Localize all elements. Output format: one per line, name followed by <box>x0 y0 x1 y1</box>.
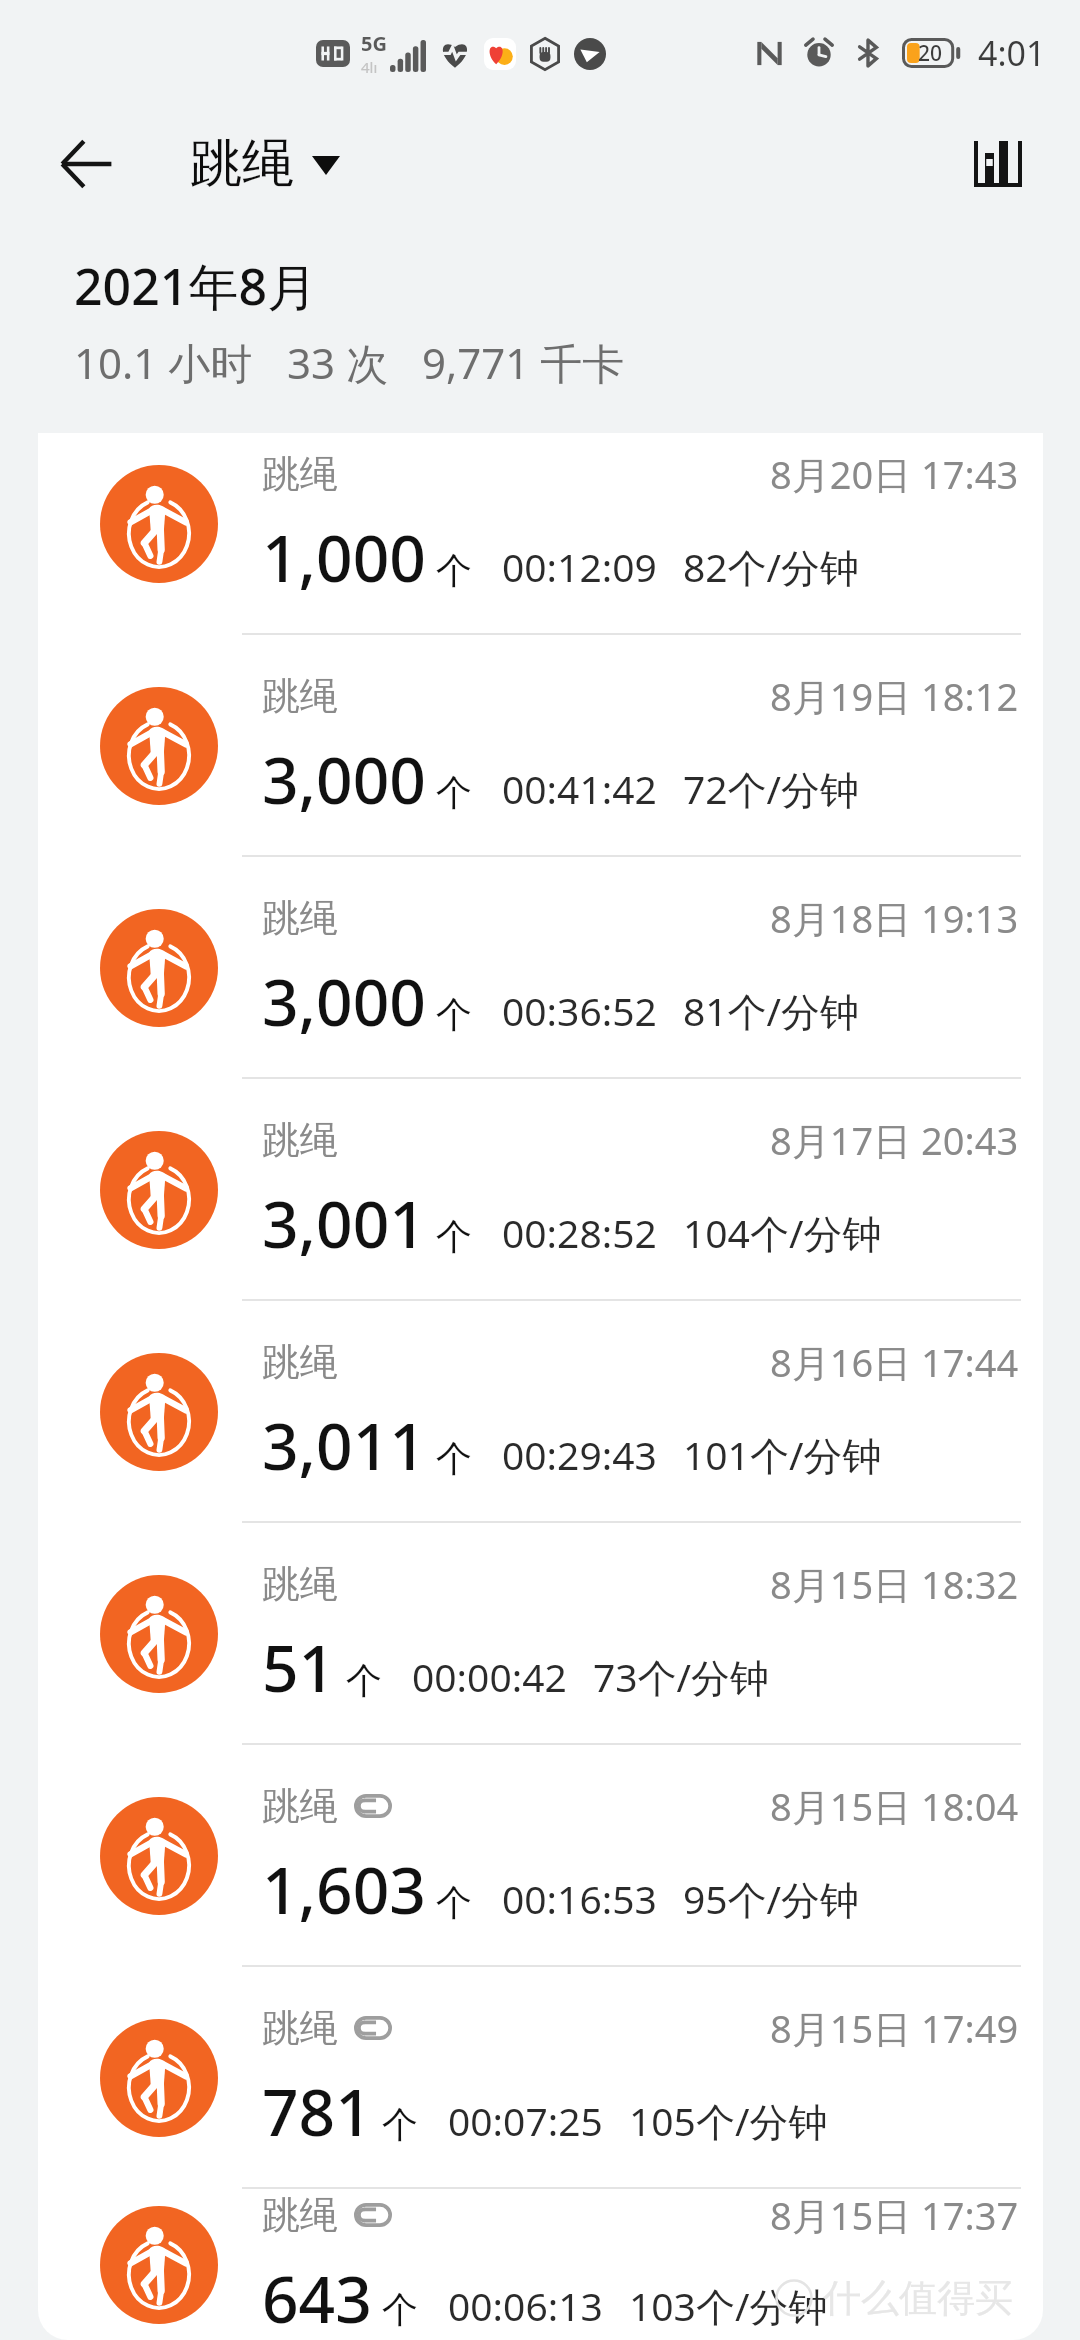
staticText: 643 <box>262 2255 372 2340</box>
staticText: 个 <box>436 1880 472 1925</box>
staticText: 00:41:42 <box>502 762 657 815</box>
staticText: 个 <box>382 2287 418 2332</box>
staticText: 9,771 千卡 <box>422 334 625 391</box>
button[interactable]: 跳绳 <box>38 2189 1043 2340</box>
staticText: 跳绳 <box>262 894 338 942</box>
staticText: 跳绳 <box>190 131 294 197</box>
staticText: 个 <box>436 992 472 1037</box>
staticText: 00:28:52 <box>502 1206 657 1259</box>
button[interactable]: 统计图表 <box>956 122 1040 206</box>
button[interactable]: 跳绳 <box>38 433 1043 635</box>
button[interactable]: 跳绳 <box>190 131 340 197</box>
button[interactable]: 跳绳 <box>38 1301 1043 1523</box>
staticText: 4:01 <box>978 30 1046 76</box>
staticText: 10.1 小时 <box>74 334 253 391</box>
button[interactable]: 跳绳 <box>38 635 1043 857</box>
staticText: 个 <box>382 2102 418 2147</box>
staticText: 8月18日 19:13 <box>770 892 1019 944</box>
staticText: 8月20日 17:43 <box>770 448 1019 500</box>
staticText: 个 <box>436 770 472 815</box>
staticText: 什么值得买 <box>823 2274 1013 2322</box>
button[interactable]: 返回 <box>44 122 128 206</box>
staticText: 8月16日 17:44 <box>770 1336 1019 1388</box>
staticText: 2021年8月 <box>74 252 317 320</box>
staticText: 跳绳 <box>262 1560 338 1608</box>
staticText: 51 <box>262 1624 336 1711</box>
staticText: 95个/分钟 <box>683 1872 860 1925</box>
staticText: 00:00:42 <box>412 1650 567 1703</box>
staticText: 8月17日 20:43 <box>770 1114 1019 1166</box>
staticText: 781 <box>262 2068 372 2155</box>
staticText: 8月15日 17:49 <box>770 2002 1019 2054</box>
staticText: 跳绳 <box>262 672 338 720</box>
staticText: 3,011 <box>262 1402 426 1489</box>
staticText: 00:16:53 <box>502 1872 657 1925</box>
staticText: 103个/分钟 <box>629 2279 828 2332</box>
button[interactable]: 跳绳 <box>38 1967 1043 2189</box>
staticText: 1,603 <box>262 1846 426 1933</box>
staticText: 4lı <box>361 57 378 77</box>
staticText: 8月19日 18:12 <box>770 670 1019 722</box>
staticText: 8月15日 17:37 <box>770 2189 1019 2241</box>
staticText: 81个/分钟 <box>683 984 860 1037</box>
staticText: 101个/分钟 <box>683 1428 882 1481</box>
staticText: 104个/分钟 <box>683 1206 882 1259</box>
staticText: 个 <box>436 1214 472 1259</box>
button[interactable]: 跳绳 <box>38 1079 1043 1301</box>
staticText: 72个/分钟 <box>683 762 860 815</box>
staticText: 3,000 <box>262 958 426 1045</box>
staticText: 跳绳 <box>262 1782 338 1830</box>
staticText: 00:06:13 <box>448 2279 603 2332</box>
staticText: 个 <box>436 548 472 593</box>
staticText: 3,001 <box>262 1180 426 1267</box>
staticText: 20 <box>918 39 943 68</box>
staticText: 个 <box>346 1658 382 1703</box>
button[interactable]: 跳绳 <box>38 1523 1043 1745</box>
staticText: 5G <box>361 30 387 57</box>
staticText: 跳绳 <box>262 1338 338 1386</box>
button[interactable]: 跳绳 <box>38 857 1043 1079</box>
staticText: 8月15日 18:32 <box>770 1558 1019 1610</box>
staticText: 个 <box>436 1436 472 1481</box>
staticText: 00:12:09 <box>502 540 657 593</box>
button[interactable]: 跳绳 <box>38 1745 1043 1967</box>
staticText: 8月15日 18:04 <box>770 1780 1019 1832</box>
staticText: 3,000 <box>262 736 426 823</box>
staticText: 跳绳 <box>262 450 338 498</box>
staticText: 00:07:25 <box>448 2094 603 2147</box>
staticText: 00:29:43 <box>502 1428 657 1481</box>
staticText: 跳绳 <box>262 2191 338 2239</box>
staticText: 82个/分钟 <box>683 540 860 593</box>
staticText: 73个/分钟 <box>593 1650 770 1703</box>
staticText: 00:36:52 <box>502 984 657 1037</box>
staticText: 1,000 <box>262 514 426 601</box>
staticText: 跳绳 <box>262 2004 338 2052</box>
staticText: 105个/分钟 <box>629 2094 828 2147</box>
staticText: 33 次 <box>287 334 388 391</box>
staticText: 跳绳 <box>262 1116 338 1164</box>
